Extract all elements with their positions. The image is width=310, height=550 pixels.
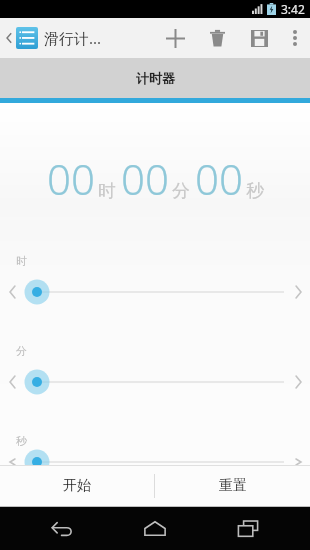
staticText: 滑行计... [44, 28, 102, 48]
button[interactable]: 时 slider [24, 279, 286, 305]
staticText: 00 [195, 150, 243, 207]
staticText: 分 [16, 344, 27, 358]
button[interactable]: Increase 时 [286, 280, 310, 304]
staticText: 秒 [16, 434, 27, 448]
staticText: 重置 [219, 477, 247, 495]
staticText: 分 [172, 180, 190, 203]
staticText: 秒 [246, 180, 264, 203]
button[interactable]: 开始 [0, 466, 154, 506]
button[interactable]: Increase 分 [286, 370, 310, 394]
button[interactable]: Decrease 时 [0, 280, 24, 304]
staticText: 计时器 [136, 70, 175, 86]
button[interactable]: Up [0, 27, 104, 49]
staticText: 时 [16, 254, 27, 268]
button[interactable]: Delete [196, 18, 238, 58]
button[interactable]: Increase 秒 [286, 459, 310, 465]
staticText: 00 [121, 150, 169, 207]
button[interactable]: Back [31, 507, 93, 550]
button[interactable]: 重置 [155, 466, 310, 506]
button[interactable]: Save [238, 18, 280, 58]
button[interactable]: Decrease 分 [0, 370, 24, 394]
staticText: 00 [47, 150, 95, 207]
button[interactable]: 秒 slider [24, 459, 286, 465]
staticText: 3:42 [281, 1, 305, 17]
button[interactable]: Decrease 秒 [0, 459, 24, 465]
staticText: 时 [98, 180, 116, 203]
button[interactable]: More options [280, 18, 310, 58]
button[interactable]: 分 slider [24, 369, 286, 395]
button[interactable]: Recent apps [217, 507, 279, 550]
button[interactable]: Add [154, 18, 196, 58]
staticText: 开始 [63, 477, 91, 495]
button[interactable]: Home [124, 507, 186, 550]
